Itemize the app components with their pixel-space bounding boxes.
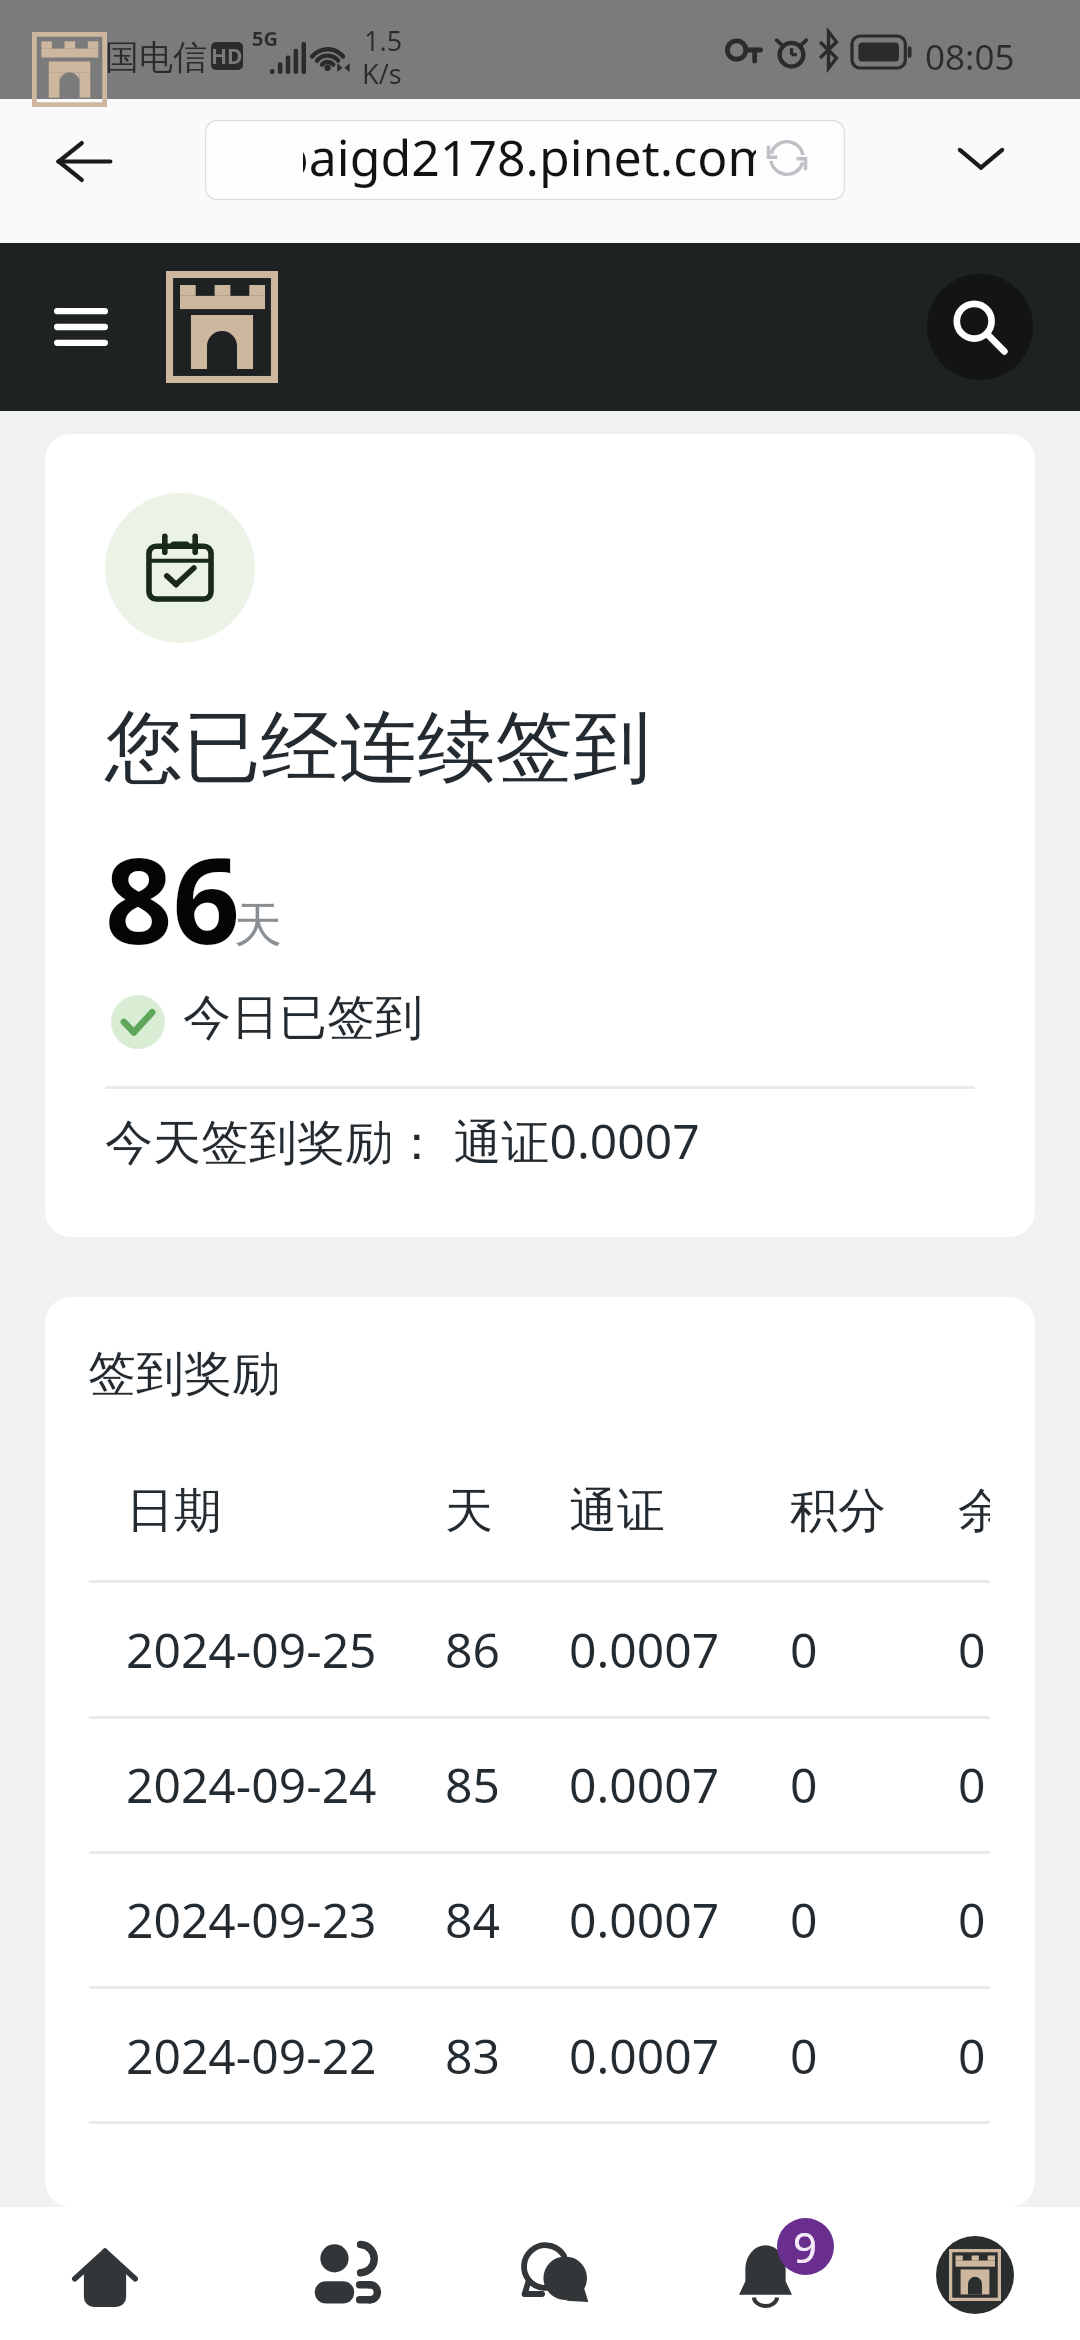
staticText: 2024-09-23 <box>126 1887 377 1952</box>
staticText: 0 <box>790 1617 818 1682</box>
staticText: 5G <box>252 25 278 52</box>
button[interactable]: Profile <box>864 2207 1080 2340</box>
button[interactable]: Search <box>927 274 1033 380</box>
staticText: 0.0007 <box>569 1887 720 1952</box>
staticText: 84 <box>445 1887 500 1952</box>
button[interactable]: baigd2178.pinet.com <box>205 120 845 200</box>
button[interactable]: Contacts <box>216 2207 432 2340</box>
staticText: 2024-09-25 <box>126 1617 377 1682</box>
staticText: 0 <box>958 1752 986 1817</box>
staticText: 2024-09-22 <box>126 2023 377 2088</box>
staticText: 1.5 <box>364 22 403 59</box>
staticText: 0 <box>790 1752 818 1817</box>
button[interactable]: Home logo <box>166 271 278 383</box>
button[interactable]: Home <box>0 2207 216 2340</box>
staticText: 日期 <box>126 1481 222 1541</box>
button[interactable]: Back <box>36 113 132 209</box>
staticText: 0 <box>790 2023 818 2088</box>
staticText: 天 <box>445 1481 493 1541</box>
staticText: baigd2178.pinet.com <box>303 123 756 191</box>
staticText: HD <box>211 42 243 70</box>
button[interactable]: Expand <box>933 110 1029 206</box>
staticText: 今日已签到 <box>183 988 423 1048</box>
staticText: 签到奖励 <box>88 1344 280 1404</box>
staticText: 积分 <box>790 1481 886 1541</box>
staticText: 08:05 <box>925 33 1015 81</box>
staticText: 通证 <box>569 1481 665 1541</box>
staticText: 0 <box>958 2023 986 2088</box>
staticText: 余 <box>958 1481 990 1541</box>
staticText: 0 <box>958 1887 986 1952</box>
staticText: 0.0007 <box>569 1752 720 1817</box>
staticText: 天 <box>234 895 282 955</box>
staticText: 2024-09-24 <box>126 1752 377 1817</box>
button[interactable]: Notifications <box>648 2207 864 2340</box>
button[interactable]: Menu <box>32 278 130 376</box>
staticText: 83 <box>445 2023 500 2088</box>
staticText: 86 <box>445 1617 500 1682</box>
button[interactable]: Chat <box>432 2207 648 2340</box>
staticText: 0.0007 <box>569 2023 720 2088</box>
staticText: K/s <box>362 55 402 92</box>
staticText: 0 <box>790 1887 818 1952</box>
staticText: 86 <box>105 818 240 979</box>
staticText: 0 <box>958 1617 986 1682</box>
staticText: 您已经连续签到 <box>105 699 651 797</box>
staticText: 9 <box>793 2218 818 2275</box>
staticText: 0.0007 <box>569 1617 720 1682</box>
staticText: 今天签到奖励： 通证0.0007 <box>105 1108 700 1174</box>
staticText: 国电信 <box>105 36 207 79</box>
staticText: 85 <box>445 1752 500 1817</box>
